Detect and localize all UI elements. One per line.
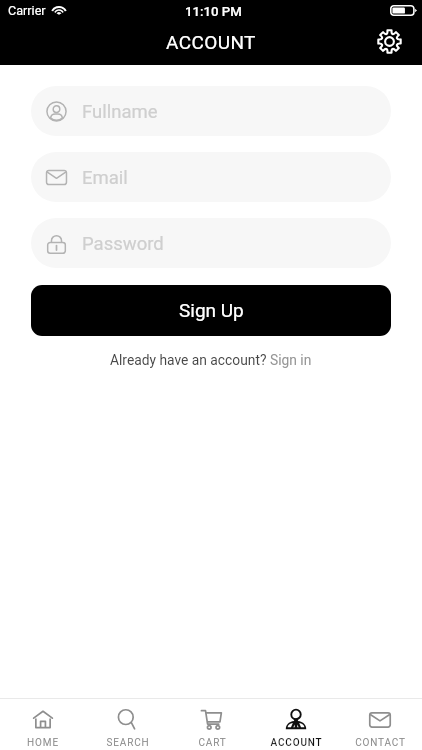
button[interactable]: Email xyxy=(31,152,391,202)
staticText: HOME xyxy=(27,737,59,749)
staticText: ACCOUNT xyxy=(270,737,323,749)
staticText: CONTACT xyxy=(355,737,406,749)
button[interactable]: CART xyxy=(170,699,254,750)
staticText: Carrier xyxy=(8,3,46,18)
staticText: SEARCH xyxy=(106,737,150,749)
button[interactable]: Fullname xyxy=(31,86,391,136)
button[interactable]: Sign in xyxy=(270,352,312,368)
button[interactable]: CONTACT xyxy=(338,699,422,750)
button[interactable]: Sign Up xyxy=(31,285,391,336)
staticText: Sign Up xyxy=(179,299,244,321)
staticText: Password xyxy=(82,233,164,255)
staticText: ACCOUNT xyxy=(166,31,256,53)
button[interactable]: SEARCH xyxy=(85,699,170,750)
button[interactable]: Password xyxy=(31,218,391,268)
button[interactable]: Settings xyxy=(372,24,406,58)
staticText: 11:10 PM xyxy=(185,4,242,19)
staticText: Sign in xyxy=(270,352,312,368)
staticText: Email xyxy=(82,167,128,189)
staticText: Fullname xyxy=(82,101,158,123)
button[interactable]: ACCOUNT xyxy=(254,699,338,750)
button[interactable]: HOME xyxy=(0,699,85,750)
staticText: Already have an account? xyxy=(110,352,270,368)
staticText: CART xyxy=(198,737,227,749)
